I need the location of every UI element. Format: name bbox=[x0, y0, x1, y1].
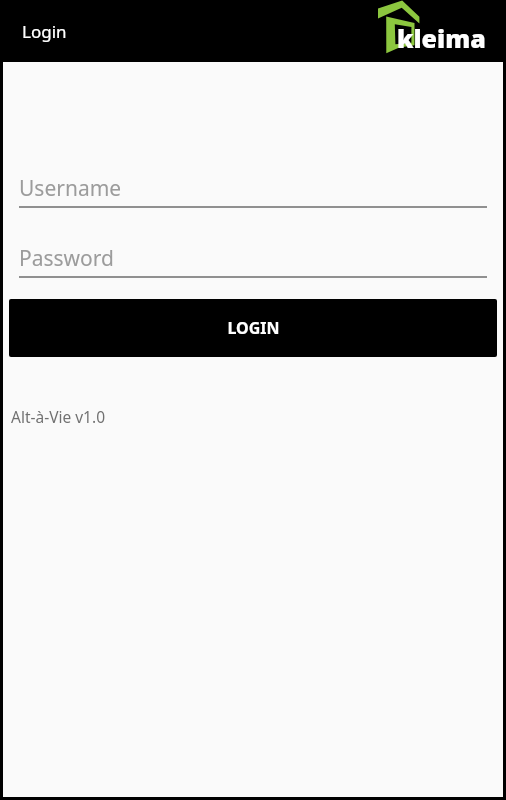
button[interactable]: Password bbox=[19, 244, 487, 278]
other: kleima logo bbox=[377, 0, 420, 56]
staticText: Password bbox=[19, 244, 114, 273]
staticText: Alt-à-Vie v1.0 bbox=[11, 406, 106, 427]
button[interactable]: LOGIN bbox=[9, 299, 497, 357]
staticText: Login bbox=[22, 20, 67, 43]
staticText: LOGIN bbox=[227, 317, 280, 339]
staticText: Username bbox=[19, 174, 122, 203]
staticText: kleima bbox=[397, 21, 486, 55]
button[interactable]: Username bbox=[19, 174, 487, 208]
